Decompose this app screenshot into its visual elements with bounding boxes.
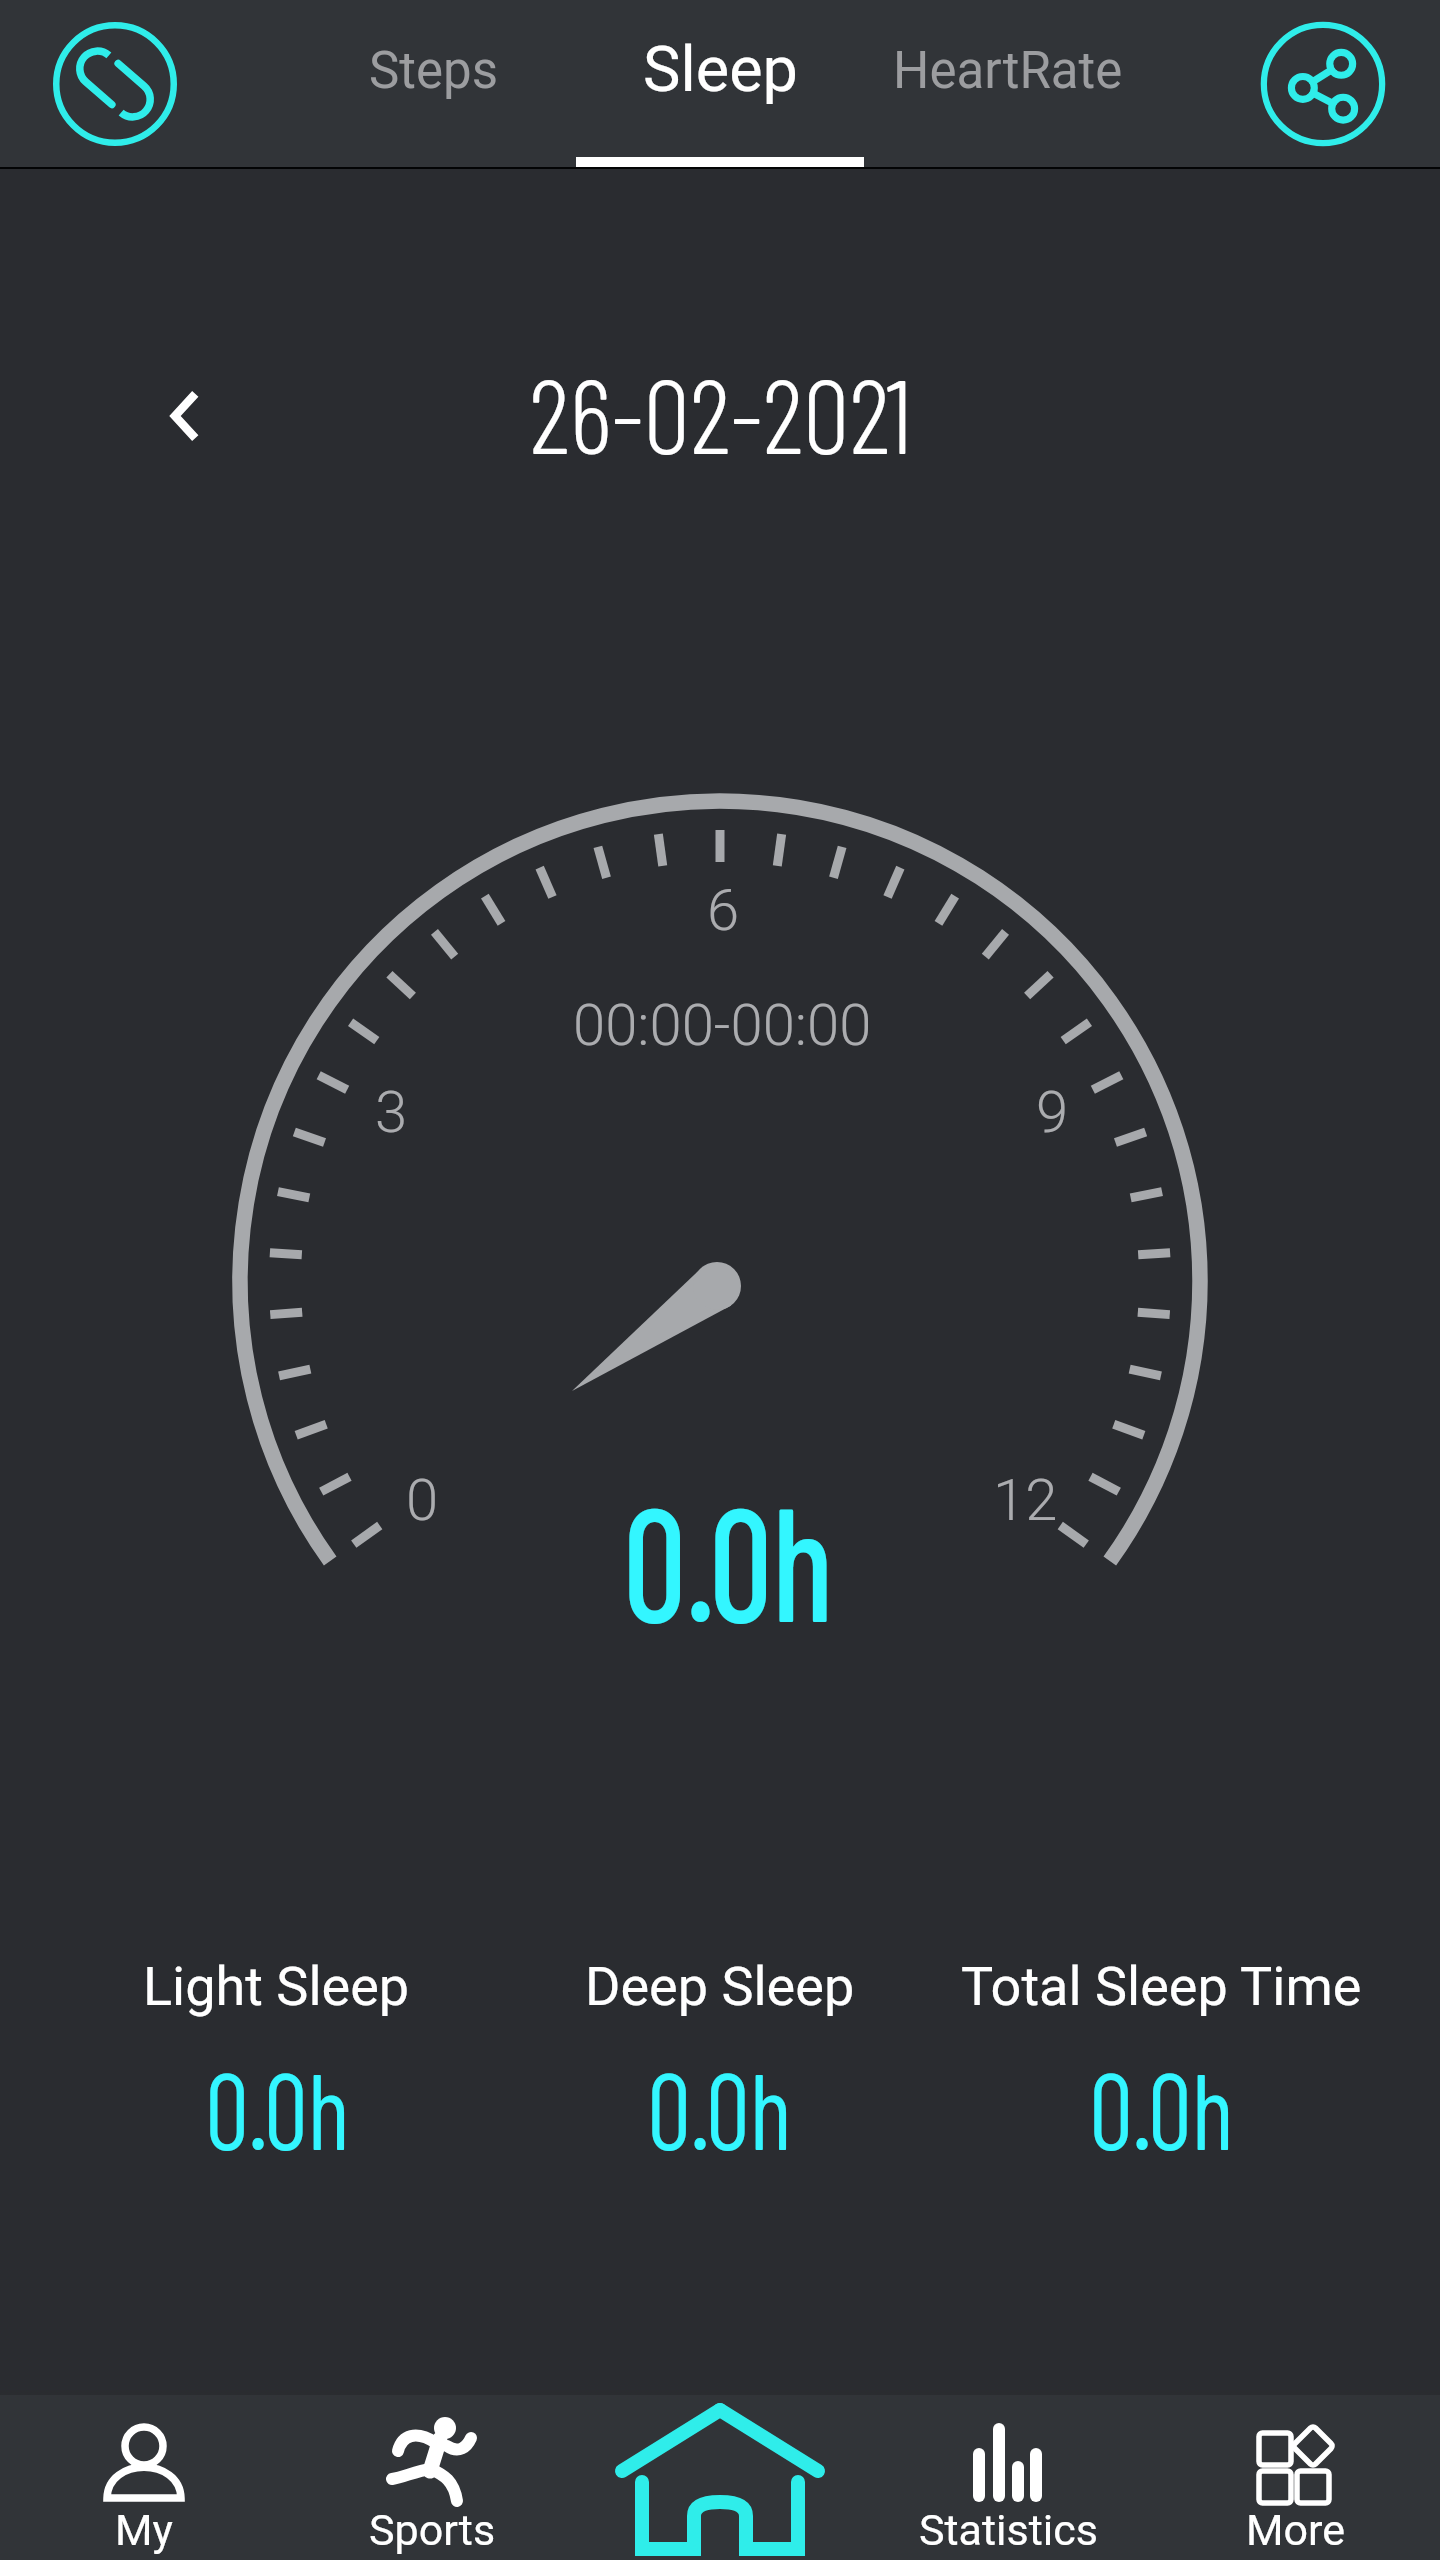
staticText: My bbox=[115, 2505, 173, 2555]
staticText: 9 bbox=[1036, 1078, 1069, 1146]
staticText: 0.0h bbox=[623, 1462, 834, 1654]
staticText: HeartRate bbox=[893, 41, 1123, 101]
button[interactable]: Steps bbox=[289, 0, 577, 167]
button[interactable]: Home bbox=[576, 2395, 864, 2560]
button[interactable]: Sleep bbox=[576, 0, 864, 167]
staticText: 0.0h bbox=[1089, 2042, 1234, 2172]
staticText: Light Sleep bbox=[143, 1955, 410, 2018]
button[interactable]: HeartRate bbox=[864, 0, 1152, 167]
staticText: 6 bbox=[707, 876, 740, 944]
staticText: 0.0h bbox=[647, 2042, 792, 2172]
staticText: Sports bbox=[369, 2505, 496, 2555]
staticText: More bbox=[1246, 2505, 1346, 2555]
button[interactable]: Previous day bbox=[141, 370, 233, 462]
staticText: 00:00-00:00 bbox=[573, 991, 872, 1059]
button[interactable]: My bbox=[0, 2395, 288, 2560]
button[interactable]: Statistics bbox=[864, 2395, 1152, 2560]
button[interactable]: Link device bbox=[50, 19, 180, 149]
staticText: 0 bbox=[406, 1466, 439, 1534]
staticText: 3 bbox=[375, 1078, 408, 1146]
staticText: 26-02-2021 bbox=[529, 350, 912, 475]
staticText: 12 bbox=[993, 1466, 1058, 1534]
staticText: Statistics bbox=[919, 2505, 1098, 2555]
staticText: 0.0h bbox=[205, 2042, 350, 2172]
button[interactable]: Share bbox=[1258, 19, 1388, 149]
button[interactable]: More bbox=[1152, 2395, 1440, 2560]
staticText: Sleep bbox=[643, 33, 798, 107]
staticText: Deep Sleep bbox=[585, 1955, 855, 2018]
button[interactable]: Sports bbox=[288, 2395, 576, 2560]
staticText: Steps bbox=[369, 41, 498, 101]
staticText: Total Sleep Time bbox=[961, 1955, 1362, 2018]
